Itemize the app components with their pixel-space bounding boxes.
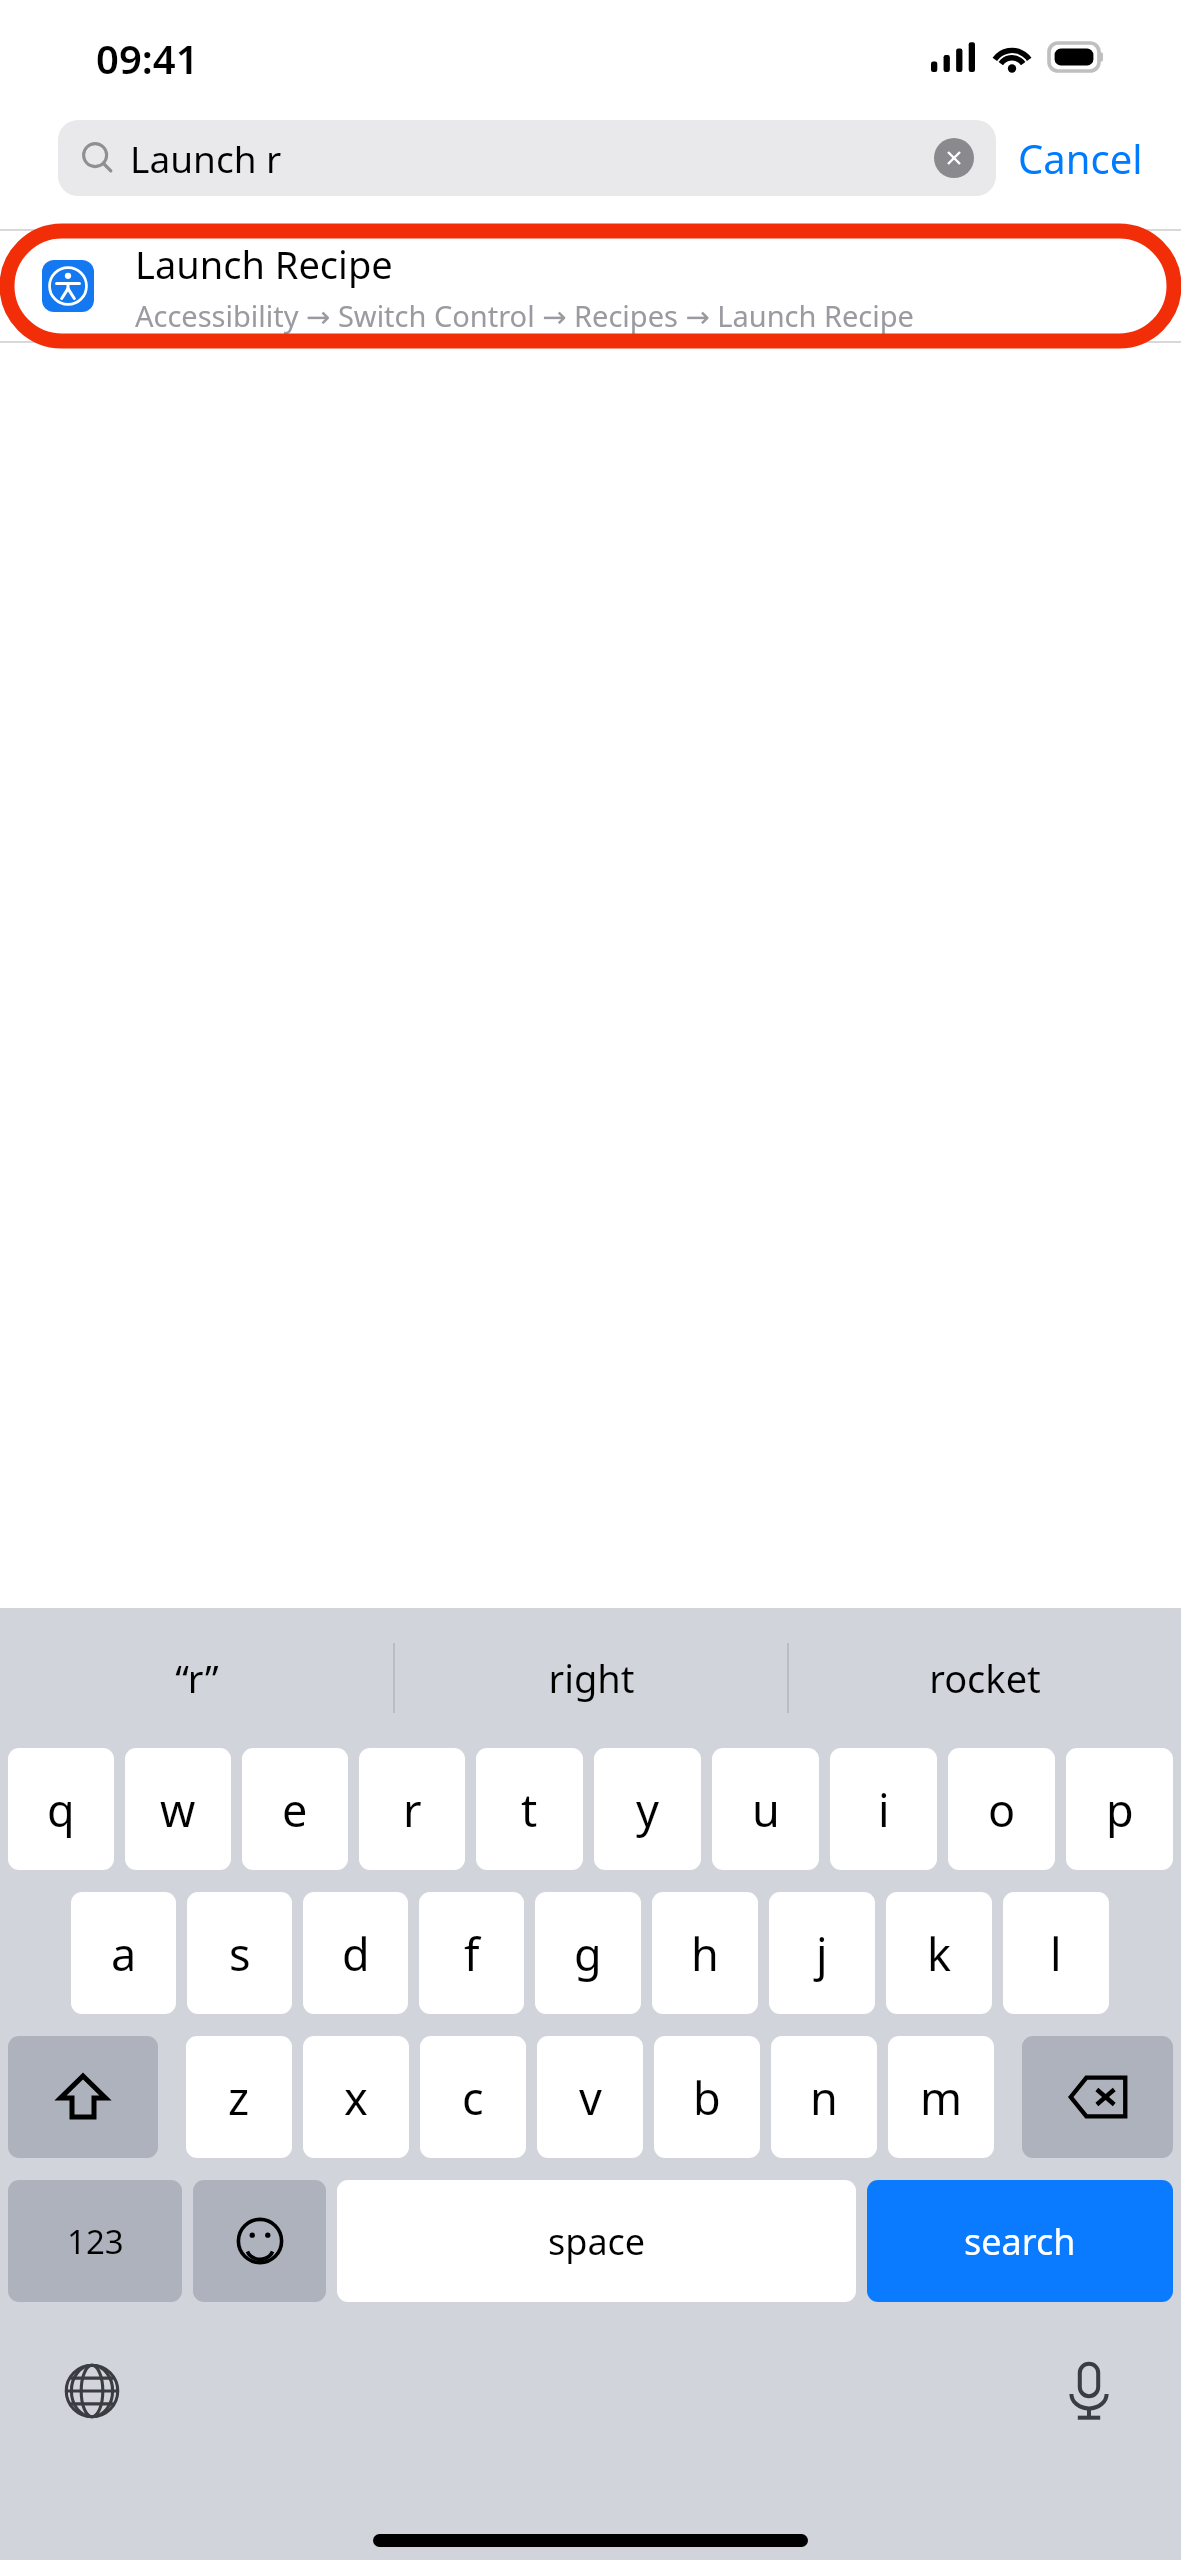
staticText: s: [229, 1923, 251, 1984]
button[interactable]: q: [8, 1748, 114, 1870]
staticText: 123: [67, 2219, 124, 2264]
button[interactable]: Launch r: [58, 120, 996, 196]
button[interactable]: Dictate: [1051, 2353, 1127, 2429]
button[interactable]: n: [771, 2036, 877, 2158]
button[interactable]: Emoji: [193, 2180, 326, 2302]
button[interactable]: j: [769, 1892, 875, 2014]
staticText: a: [111, 1923, 137, 1984]
staticText: j: [816, 1923, 828, 1984]
button[interactable]: w: [125, 1748, 231, 1870]
button[interactable]: Cancel: [996, 121, 1151, 195]
button[interactable]: 123: [8, 2180, 182, 2302]
staticText: m: [920, 2067, 963, 2128]
staticText: g: [574, 1923, 602, 1984]
staticText: Launch r: [130, 133, 282, 183]
button[interactable]: Delete: [1022, 2036, 1173, 2158]
button[interactable]: f: [419, 1892, 524, 2014]
staticText: q: [47, 1779, 75, 1840]
button[interactable]: a: [71, 1892, 176, 2014]
button[interactable]: i: [830, 1748, 937, 1870]
button[interactable]: Shift: [8, 2036, 158, 2158]
staticText: Launch Recipe: [135, 238, 393, 290]
button[interactable]: e: [242, 1748, 348, 1870]
staticText: w: [160, 1779, 196, 1840]
button[interactable]: h: [652, 1892, 758, 2014]
button[interactable]: c: [420, 2036, 526, 2158]
staticText: r: [403, 1779, 422, 1840]
button[interactable]: m: [888, 2036, 994, 2158]
staticText: Accessibility → Switch Control → Recipes…: [135, 296, 914, 335]
button[interactable]: y: [594, 1748, 701, 1870]
staticText: right: [548, 1652, 635, 1704]
button[interactable]: v: [537, 2036, 643, 2158]
button[interactable]: x: [303, 2036, 409, 2158]
button[interactable]: d: [303, 1892, 408, 2014]
button[interactable]: space: [337, 2180, 856, 2302]
button[interactable]: right: [395, 1608, 787, 1748]
staticText: Cancel: [1018, 131, 1143, 185]
button[interactable]: s: [187, 1892, 292, 2014]
button[interactable]: k: [886, 1892, 992, 2014]
staticText: x: [344, 2067, 368, 2128]
button[interactable]: l: [1003, 1892, 1109, 2014]
staticText: h: [691, 1923, 719, 1984]
staticText: b: [693, 2067, 721, 2128]
staticText: y: [636, 1779, 659, 1840]
button[interactable]: Clear text: [934, 138, 974, 178]
staticText: v: [579, 2067, 602, 2128]
button[interactable]: p: [1066, 1748, 1173, 1870]
staticText: p: [1106, 1779, 1134, 1840]
button[interactable]: Change keyboard: [54, 2353, 130, 2429]
staticText: d: [342, 1923, 370, 1984]
button[interactable]: o: [948, 1748, 1055, 1870]
button[interactable]: u: [712, 1748, 819, 1870]
button[interactable]: search: [867, 2180, 1173, 2302]
button[interactable]: g: [535, 1892, 641, 2014]
staticText: c: [462, 2067, 484, 2128]
staticText: space: [548, 2217, 646, 2266]
staticText: “r”: [175, 1652, 219, 1704]
button[interactable]: “r”: [0, 1608, 393, 1748]
staticText: rocket: [929, 1652, 1041, 1704]
staticText: search: [964, 2217, 1076, 2266]
button[interactable]: z: [186, 2036, 292, 2158]
staticText: z: [228, 2067, 250, 2128]
button[interactable]: rocket: [789, 1608, 1181, 1748]
staticText: n: [810, 2067, 838, 2128]
button[interactable]: t: [476, 1748, 583, 1870]
staticText: k: [927, 1923, 952, 1984]
staticText: u: [752, 1779, 780, 1840]
button[interactable]: r: [359, 1748, 465, 1870]
button[interactable]: Launch Recipe: [0, 224, 1181, 348]
staticText: 09:41: [96, 31, 199, 85]
staticText: f: [464, 1923, 480, 1984]
staticText: t: [521, 1779, 538, 1840]
staticText: o: [988, 1779, 1016, 1840]
staticText: l: [1050, 1923, 1062, 1984]
staticText: e: [282, 1779, 308, 1840]
button[interactable]: b: [654, 2036, 760, 2158]
staticText: i: [878, 1779, 890, 1840]
